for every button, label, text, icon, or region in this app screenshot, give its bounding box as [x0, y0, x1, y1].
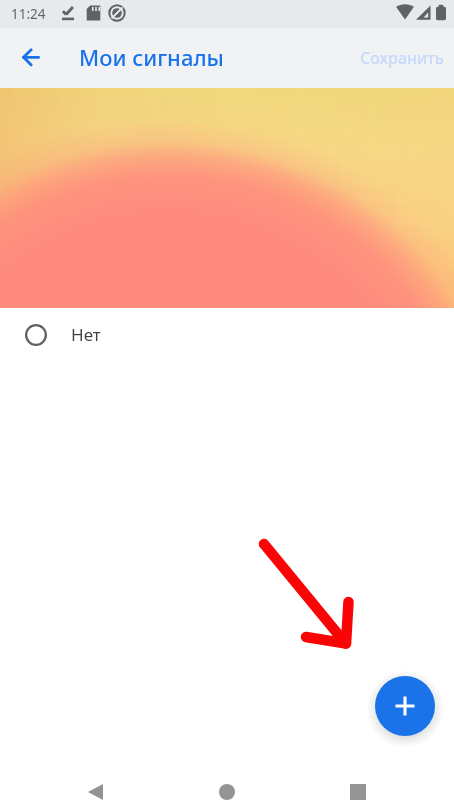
button[interactable]: Add alarm [375, 676, 435, 736]
button[interactable]: Back [9, 36, 53, 80]
staticText: Сохранить [360, 47, 444, 69]
staticText: Нет [71, 323, 101, 346]
button[interactable]: Сохранить [352, 39, 452, 77]
staticText: Мои сигналы [79, 42, 224, 72]
button[interactable]: Нет [0, 308, 454, 361]
staticText: 11:24 [11, 5, 46, 23]
